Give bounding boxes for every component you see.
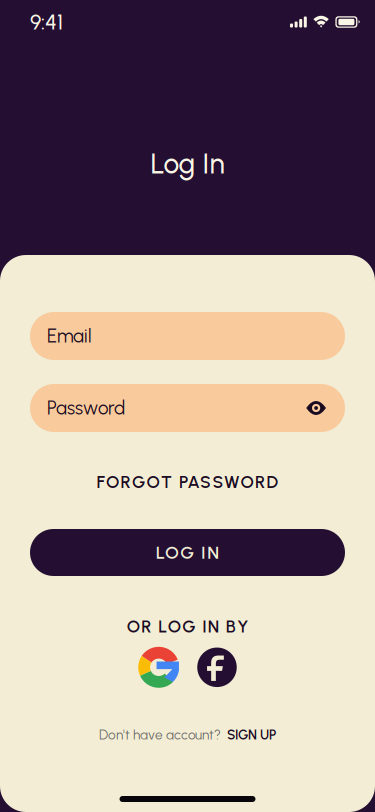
staticText: FORGOT PASSWORD — [96, 472, 278, 492]
button[interactable]: Email — [30, 312, 345, 360]
staticText: Log In — [150, 147, 224, 181]
button[interactable]: LOG IN — [30, 529, 345, 576]
button[interactable]: Log in with Google — [138, 647, 179, 688]
staticText: LOG IN — [156, 542, 219, 563]
staticText: OR LOG IN BY — [127, 616, 248, 637]
button[interactable]: Password — [30, 384, 345, 432]
staticText: SIGN UP — [227, 727, 276, 743]
button[interactable]: SIGN UP — [227, 727, 276, 743]
staticText: 9:41 — [30, 9, 63, 35]
button[interactable]: Log in with Facebook — [197, 647, 237, 687]
staticText: Password — [47, 397, 125, 419]
button[interactable]: FORGOT PASSWORD — [0, 468, 375, 496]
staticText: Don't have account? — [99, 727, 221, 743]
staticText: Email — [47, 325, 92, 347]
